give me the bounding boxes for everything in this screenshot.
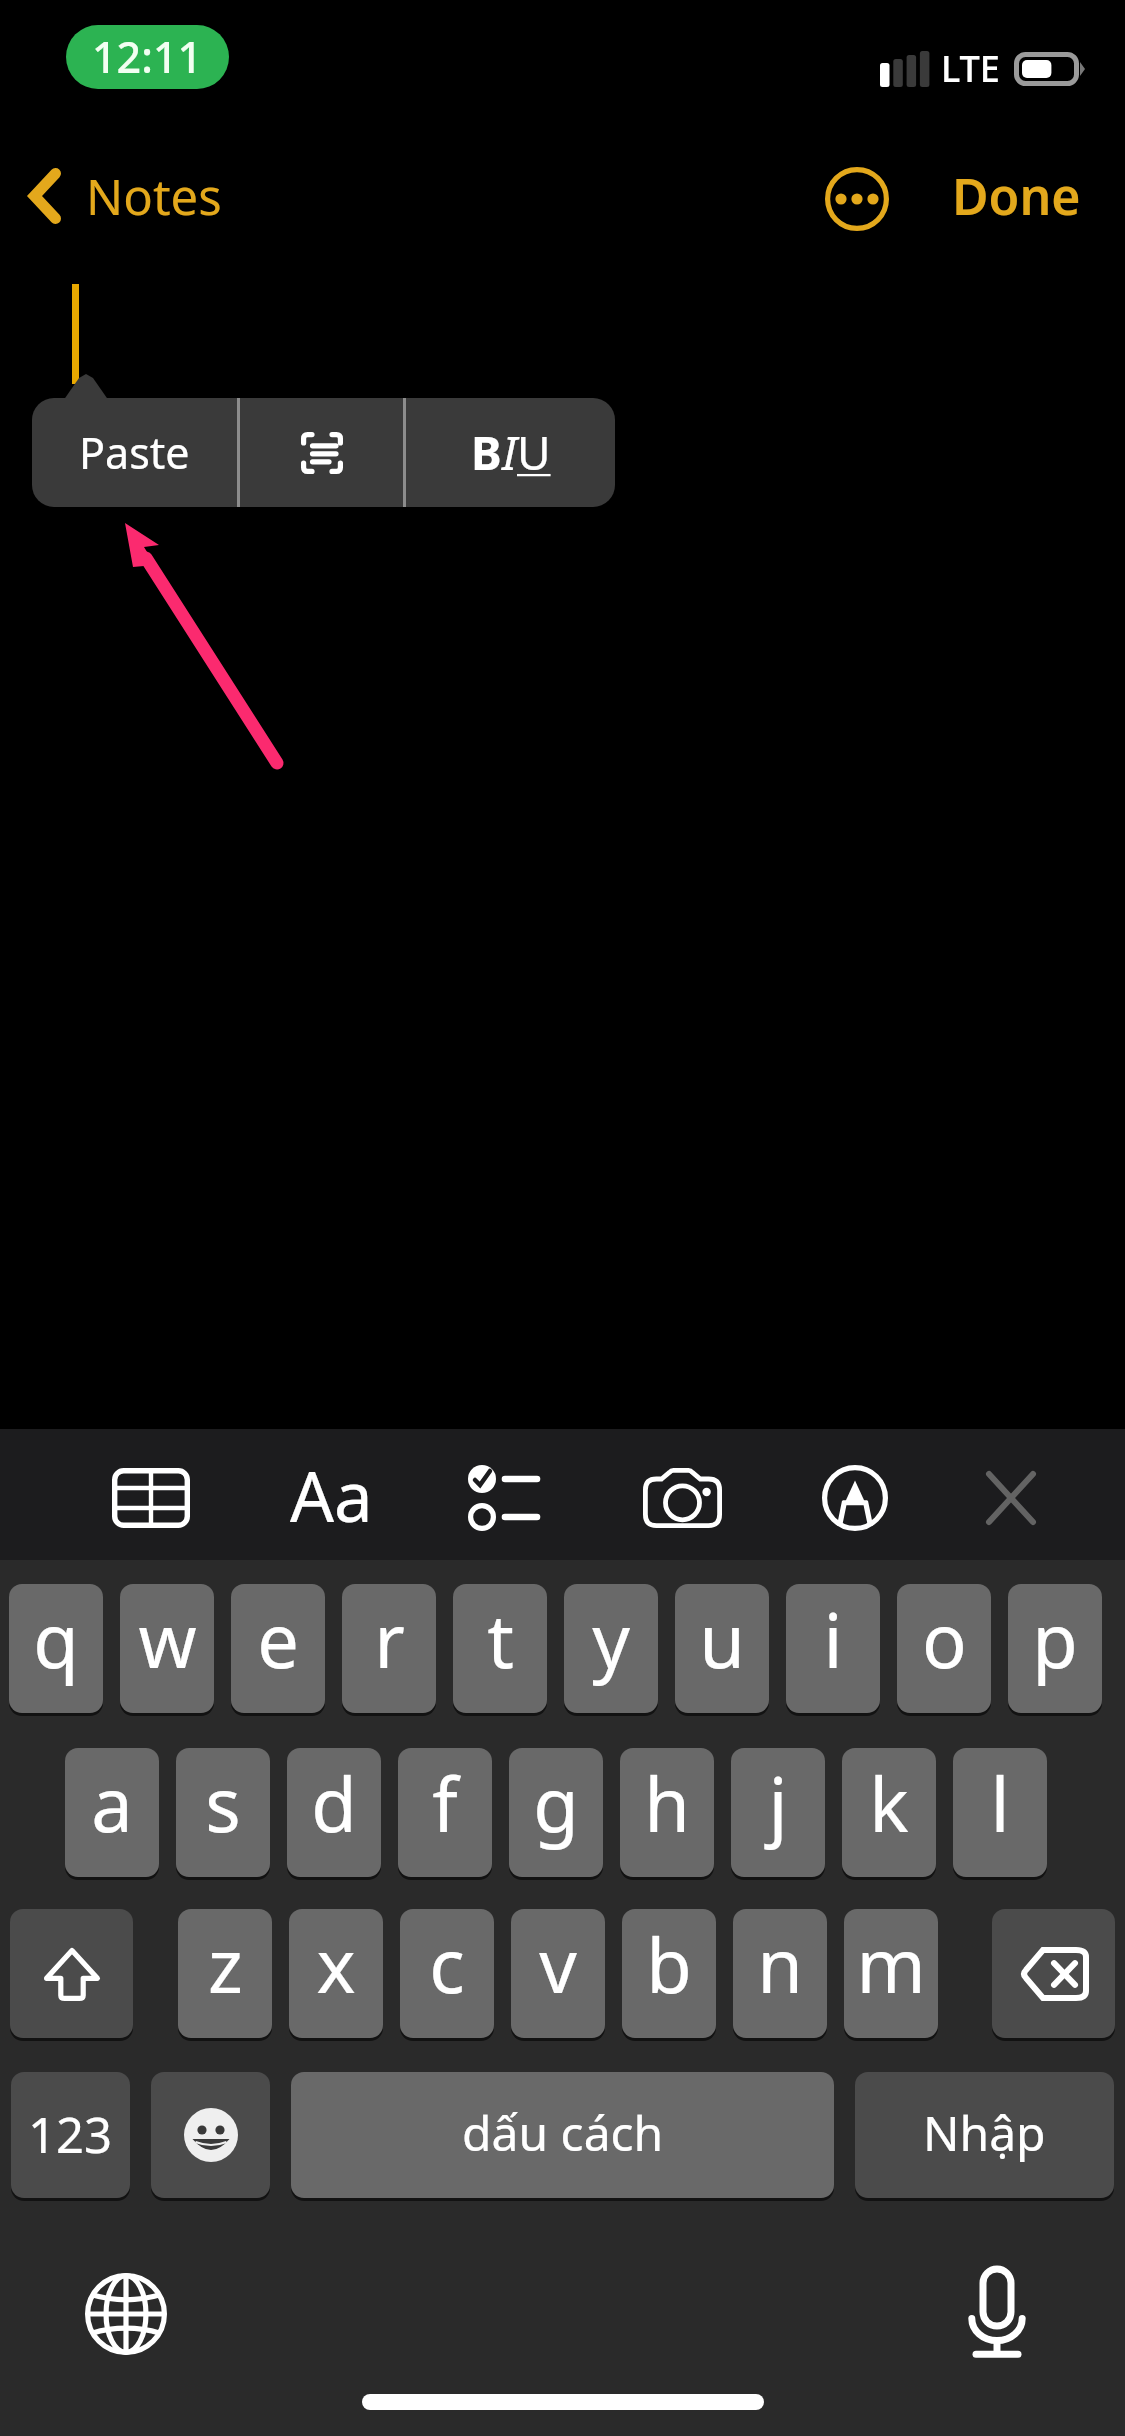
staticText: q: [33, 1589, 79, 1690]
button[interactable]: More options: [825, 167, 889, 231]
staticText: U: [517, 421, 551, 484]
staticText: h: [644, 1753, 690, 1854]
staticText: m: [856, 1914, 926, 2015]
staticText: dấu cách: [462, 2100, 664, 2165]
button[interactable]: u: [675, 1584, 769, 1713]
button[interactable]: Notes: [29, 154, 222, 238]
staticText: v: [539, 1914, 577, 2015]
staticText: LTE: [941, 44, 1000, 93]
button[interactable]: w: [120, 1584, 214, 1713]
button[interactable]: Change keyboard: [80, 2268, 172, 2360]
staticText: Aa: [290, 1448, 373, 1526]
button[interactable]: i: [786, 1584, 880, 1713]
staticText: I: [502, 421, 517, 484]
button[interactable]: m: [844, 1909, 938, 2038]
button[interactable]: b: [622, 1909, 716, 2038]
button[interactable]: Nhập: [855, 2072, 1114, 2198]
staticText: 12:11: [92, 27, 203, 86]
button[interactable]: x: [289, 1909, 383, 2038]
staticText: k: [869, 1753, 909, 1854]
button[interactable]: Paste: [32, 398, 237, 507]
button[interactable]: r: [342, 1584, 436, 1713]
staticText: l: [990, 1753, 1010, 1854]
button[interactable]: l: [953, 1748, 1047, 1877]
staticText: y: [592, 1589, 630, 1690]
button[interactable]: h: [620, 1748, 714, 1877]
button[interactable]: v: [511, 1909, 605, 2038]
button[interactable]: e: [231, 1584, 325, 1713]
staticText: Paste: [79, 423, 190, 482]
button[interactable]: j: [731, 1748, 825, 1877]
button[interactable]: Dictate: [955, 2262, 1039, 2362]
button[interactable]: Shift: [10, 1909, 133, 2038]
staticText: s: [205, 1753, 241, 1854]
staticText: Done: [952, 162, 1081, 230]
staticText: b: [646, 1914, 692, 2015]
button[interactable]: o: [897, 1584, 991, 1713]
button[interactable]: s: [176, 1748, 270, 1877]
button[interactable]: Done: [952, 157, 1081, 235]
button[interactable]: dấu cách: [291, 2072, 834, 2198]
staticText: c: [429, 1914, 465, 2015]
staticText: w: [138, 1589, 197, 1690]
button[interactable]: t: [453, 1584, 547, 1713]
staticText: u: [699, 1589, 745, 1690]
staticText: n: [757, 1914, 803, 2015]
button[interactable]: y: [564, 1584, 658, 1713]
button[interactable]: p: [1008, 1584, 1102, 1713]
button[interactable]: f: [398, 1748, 492, 1877]
button[interactable]: Format: [281, 1459, 377, 1537]
staticText: B: [471, 421, 502, 484]
button[interactable]: Emoji: [151, 2072, 270, 2198]
button[interactable]: Checklist: [456, 1459, 552, 1537]
staticText: i: [823, 1589, 843, 1690]
staticText: x: [316, 1914, 356, 2015]
staticText: Notes: [86, 163, 222, 230]
staticText: g: [533, 1753, 579, 1854]
button[interactable]: k: [842, 1748, 936, 1877]
staticText: e: [257, 1589, 299, 1690]
staticText: d: [311, 1753, 357, 1854]
button[interactable]: Table: [103, 1459, 199, 1537]
button[interactable]: z: [178, 1909, 272, 2038]
staticText: p: [1032, 1589, 1078, 1690]
button[interactable]: d: [287, 1748, 381, 1877]
button[interactable]: Close: [963, 1459, 1059, 1537]
staticText: j: [768, 1753, 788, 1854]
staticText: r: [374, 1589, 405, 1690]
staticText: o: [922, 1589, 967, 1690]
button[interactable]: c: [400, 1909, 494, 2038]
button[interactable]: 123: [11, 2072, 130, 2198]
staticText: Nhập: [923, 2100, 1046, 2165]
staticText: t: [487, 1589, 514, 1690]
button[interactable]: a: [65, 1748, 159, 1877]
button[interactable]: Markup: [807, 1459, 903, 1537]
button[interactable]: q: [9, 1584, 103, 1713]
button[interactable]: n: [733, 1909, 827, 2038]
staticText: 123: [28, 2101, 113, 2168]
button[interactable]: Camera: [634, 1459, 730, 1537]
staticText: z: [208, 1914, 243, 2015]
staticText: a: [91, 1753, 133, 1854]
button[interactable]: g: [509, 1748, 603, 1877]
button[interactable]: Text formatting: [406, 398, 615, 507]
button[interactable]: Backspace: [992, 1909, 1115, 2038]
button[interactable]: Scan text: [240, 398, 403, 507]
staticText: f: [432, 1753, 458, 1854]
